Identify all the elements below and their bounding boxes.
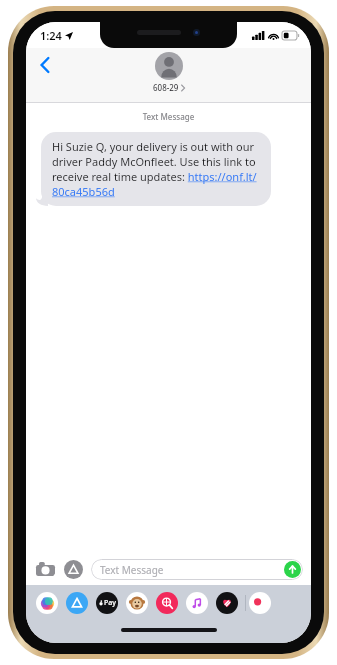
button[interactable]: More apps bbox=[249, 592, 271, 614]
button[interactable]: Camera bbox=[34, 558, 56, 580]
button[interactable]: Memoji bbox=[126, 592, 148, 614]
button[interactable]: 608-29 bbox=[147, 51, 191, 94]
button[interactable]: Text Message bbox=[91, 559, 303, 580]
staticText: Hi Suzie Q, your delivery is out with ou… bbox=[52, 139, 260, 199]
staticText: Text Message bbox=[100, 563, 164, 577]
staticText: 608-29 bbox=[153, 82, 179, 93]
button[interactable]: Images bbox=[156, 592, 178, 614]
button[interactable]: App Store bbox=[64, 560, 83, 579]
button[interactable]: App Store bbox=[66, 592, 88, 614]
button[interactable]: Back bbox=[32, 52, 58, 78]
button[interactable]: Photos bbox=[36, 592, 58, 614]
staticText: Pay bbox=[104, 598, 116, 608]
button[interactable]: Digital Touch bbox=[216, 592, 238, 614]
staticText: 1:24 bbox=[40, 28, 62, 43]
button[interactable]: Apple Pay bbox=[96, 592, 118, 614]
button[interactable]: Music bbox=[186, 592, 208, 614]
button[interactable]: Hi Suzie Q, your delivery is out with ou… bbox=[41, 132, 271, 206]
button[interactable]: Send bbox=[284, 561, 301, 578]
staticText: Text Message bbox=[26, 111, 311, 122]
